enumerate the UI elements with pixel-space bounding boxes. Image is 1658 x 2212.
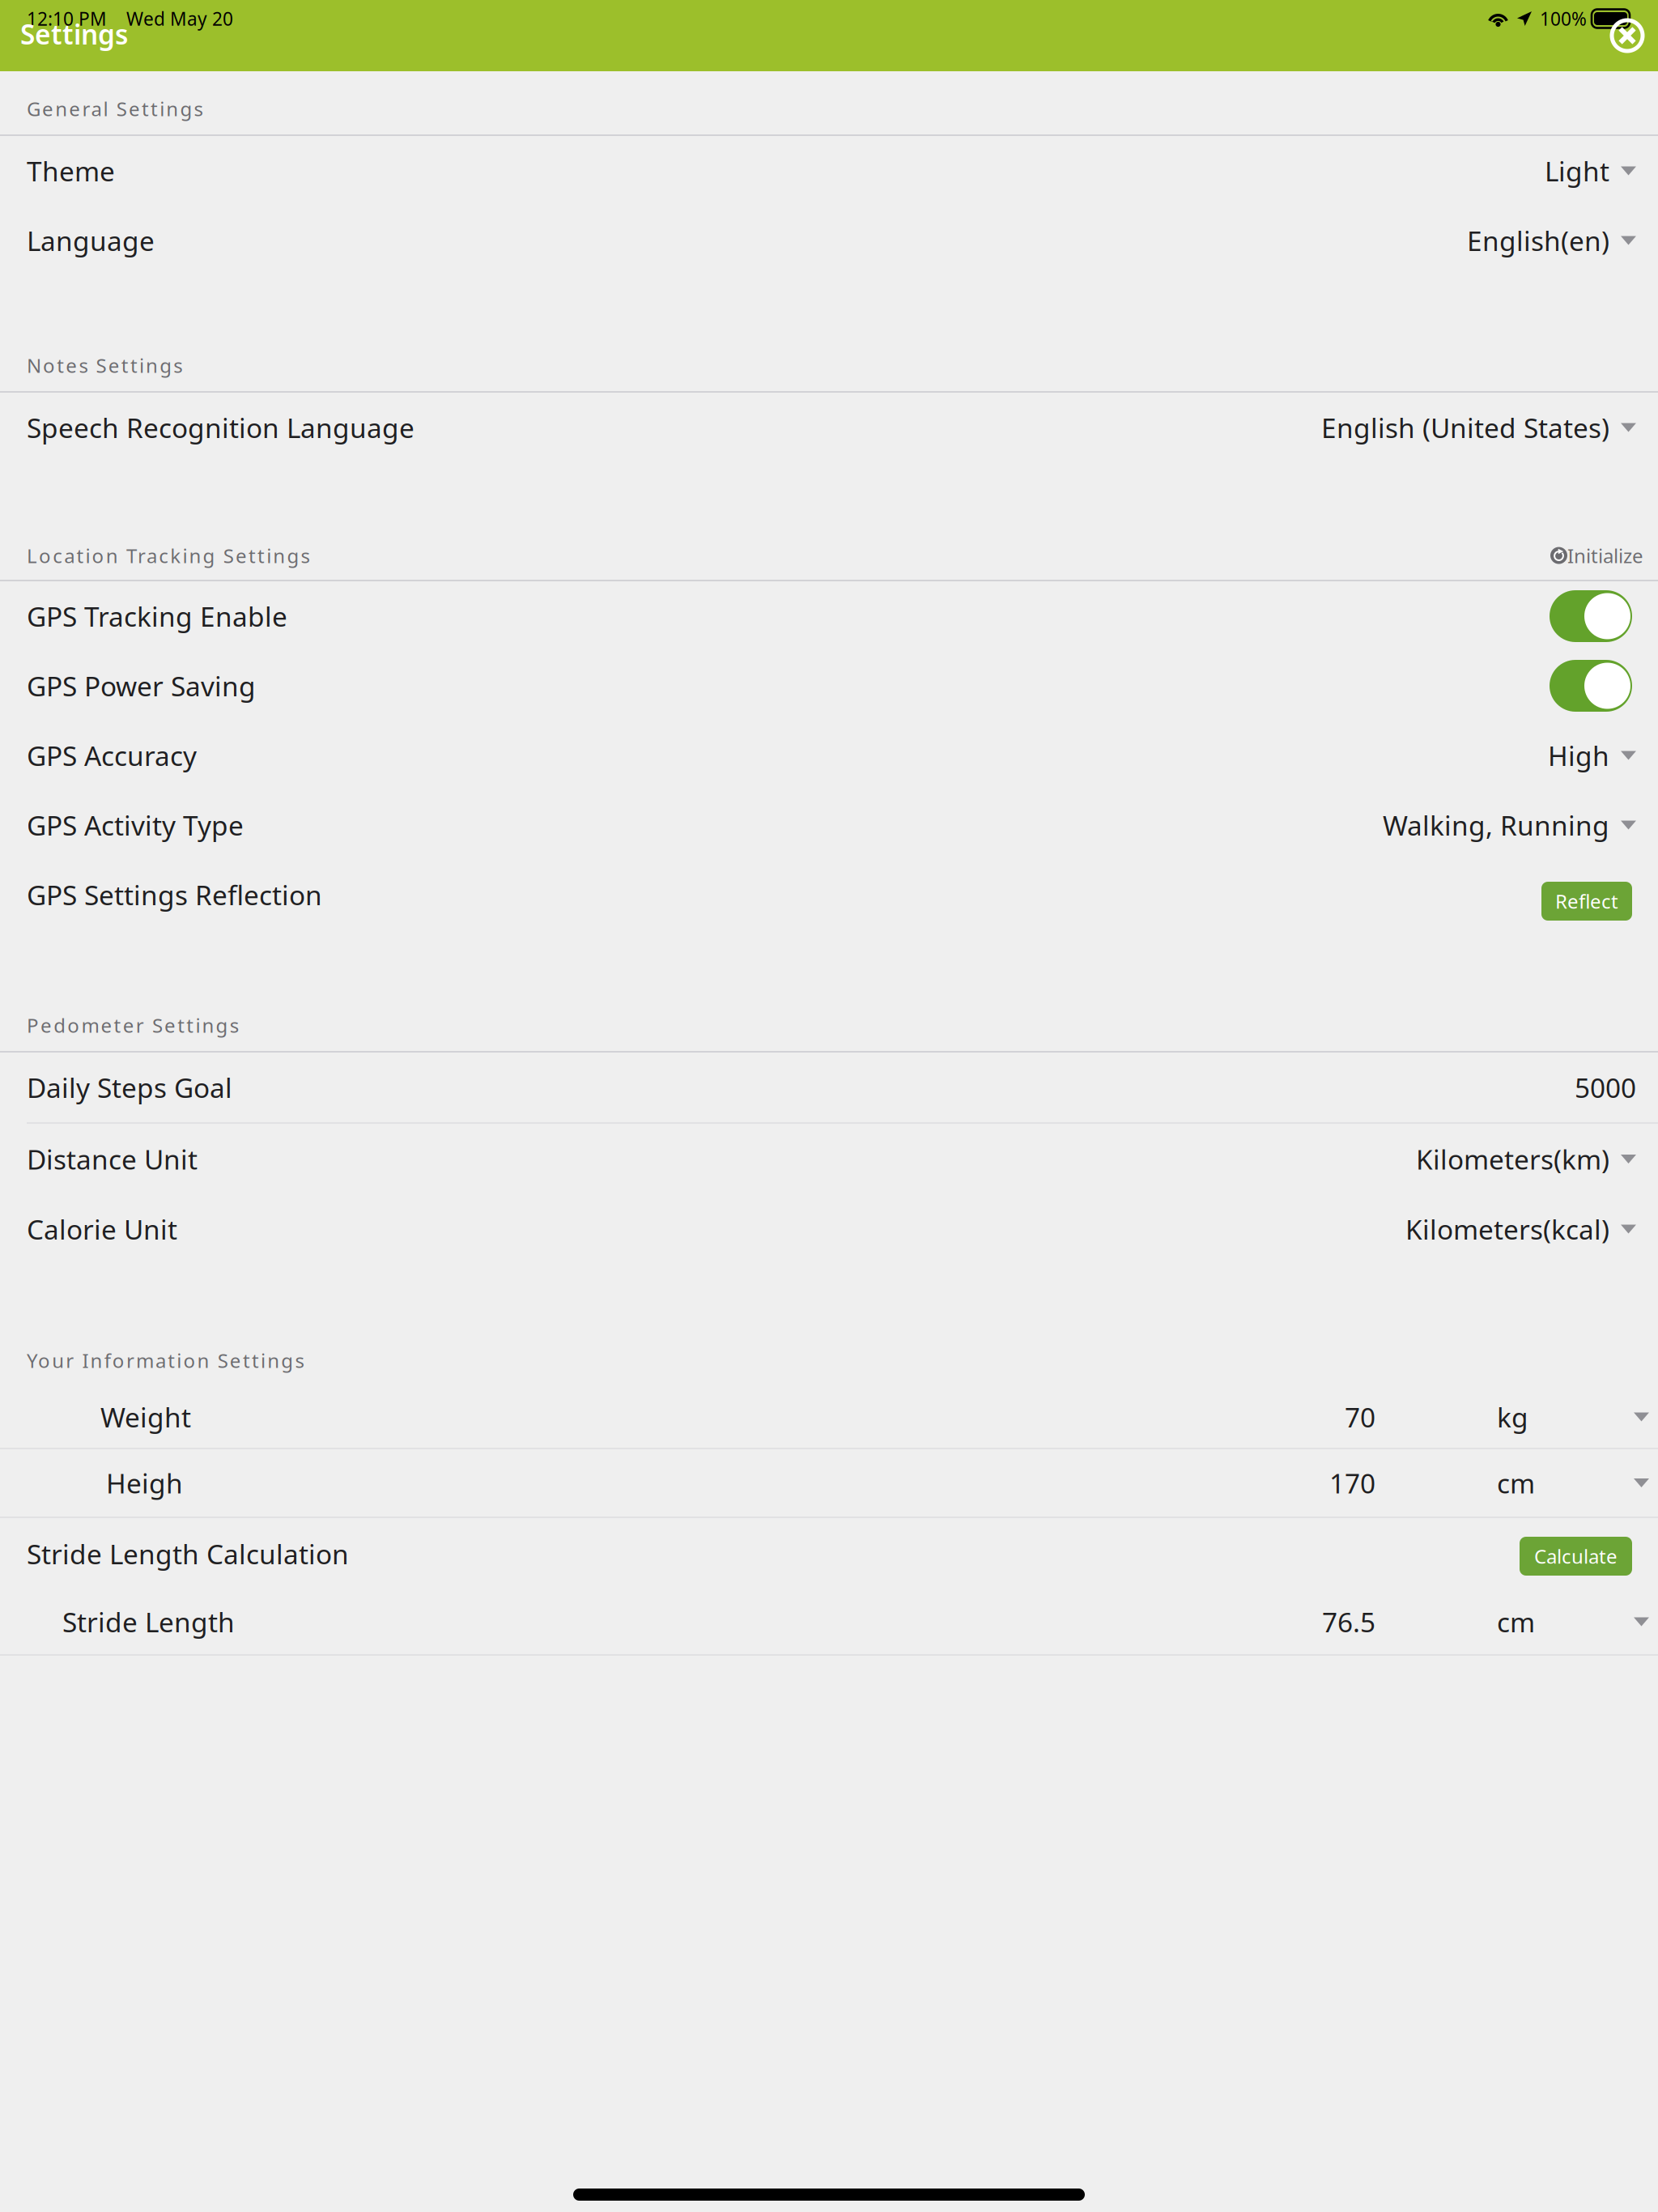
button[interactable]: GPS Accuracy: [0, 721, 1658, 790]
button[interactable]: Reflect: [1541, 882, 1632, 921]
staticText: 5000: [1575, 1069, 1636, 1105]
button[interactable]: Initialize: [1550, 543, 1643, 568]
staticText: 76.5: [1322, 1604, 1375, 1640]
staticText: Wed May 20: [126, 6, 233, 31]
button[interactable]: Speech Recognition Language: [0, 393, 1658, 462]
button[interactable]: Daily Steps Goal: [0, 1053, 1658, 1122]
staticText: GPS Accuracy: [27, 738, 197, 773]
button[interactable]: Stride Length: [0, 1589, 1658, 1654]
button[interactable]: GPS Power Saving: [0, 651, 1658, 721]
staticText: Initialize: [1567, 543, 1643, 568]
button[interactable]: Weight: [0, 1386, 1658, 1448]
button[interactable]: Distance Unit: [0, 1124, 1658, 1194]
staticText: English (United States): [1321, 410, 1609, 445]
button[interactable]: Language: [0, 206, 1658, 275]
staticText: Your Information Settings: [27, 1347, 304, 1373]
staticText: General Settings: [27, 96, 203, 121]
staticText: 170: [1329, 1465, 1375, 1501]
button[interactable]: Theme: [0, 136, 1658, 206]
staticText: Pedometer Settings: [27, 1012, 239, 1038]
staticText: English(en): [1467, 223, 1609, 258]
staticText: cm: [1497, 1604, 1535, 1640]
staticText: Daily Steps Goal: [27, 1069, 232, 1105]
staticText: GPS Power Saving: [27, 668, 256, 704]
staticText: Kilometers(km): [1416, 1141, 1609, 1177]
button[interactable]: Heigh: [0, 1449, 1658, 1516]
staticText: Kilometers(kcal): [1405, 1211, 1609, 1247]
staticText: Distance Unit: [27, 1141, 198, 1177]
staticText: Language: [27, 223, 155, 258]
staticText: Walking, Running: [1383, 807, 1609, 843]
staticText: Notes Settings: [27, 352, 182, 378]
button[interactable]: Calculate: [1520, 1537, 1632, 1576]
staticText: 70: [1345, 1399, 1375, 1435]
staticText: GPS Settings Reflection: [27, 877, 322, 913]
staticText: Settings: [20, 16, 128, 52]
button[interactable]: GPS Activity Type: [0, 790, 1658, 860]
staticText: GPS Activity Type: [27, 807, 244, 843]
button[interactable]: GPS Tracking Enable: [0, 581, 1658, 651]
staticText: Calculate: [1534, 1543, 1618, 1569]
staticText: Stride Length Calculation: [27, 1536, 349, 1572]
staticText: kg: [1497, 1399, 1528, 1435]
button[interactable]: Calorie Unit: [0, 1194, 1658, 1264]
staticText: Weight: [100, 1399, 191, 1435]
staticText: Theme: [27, 153, 115, 189]
button[interactable]: Close: [1610, 19, 1644, 53]
staticText: Location Tracking Settings: [27, 543, 310, 568]
staticText: Speech Recognition Language: [27, 410, 414, 445]
staticText: Stride Length: [62, 1604, 235, 1640]
staticText: Heigh: [106, 1465, 183, 1501]
staticText: GPS Tracking Enable: [27, 598, 287, 634]
staticText: 100%: [1540, 6, 1587, 31]
staticText: High: [1548, 738, 1609, 773]
staticText: 12:10 PM: [27, 6, 107, 31]
staticText: Light: [1545, 153, 1609, 189]
staticText: Reflect: [1555, 888, 1618, 914]
staticText: cm: [1497, 1465, 1535, 1501]
staticText: Calorie Unit: [27, 1211, 177, 1247]
